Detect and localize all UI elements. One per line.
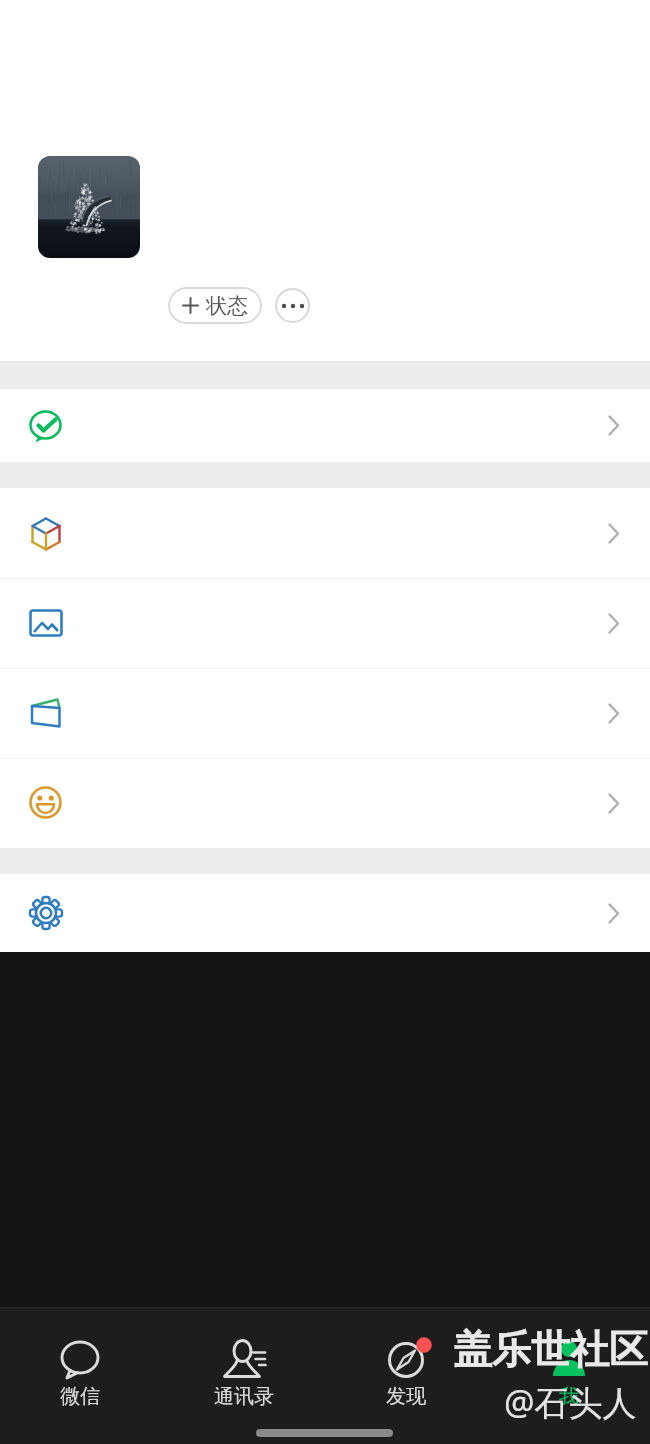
staticText: 状态 [206, 293, 248, 319]
staticText: 发现 [386, 1384, 426, 1409]
staticText: 通讯录 [214, 1384, 274, 1409]
staticText: 盖乐世社区 [453, 1325, 648, 1374]
staticText: @石头人 [504, 1379, 637, 1425]
staticText: 微信 [60, 1384, 100, 1409]
staticText: 我 [559, 1384, 579, 1409]
